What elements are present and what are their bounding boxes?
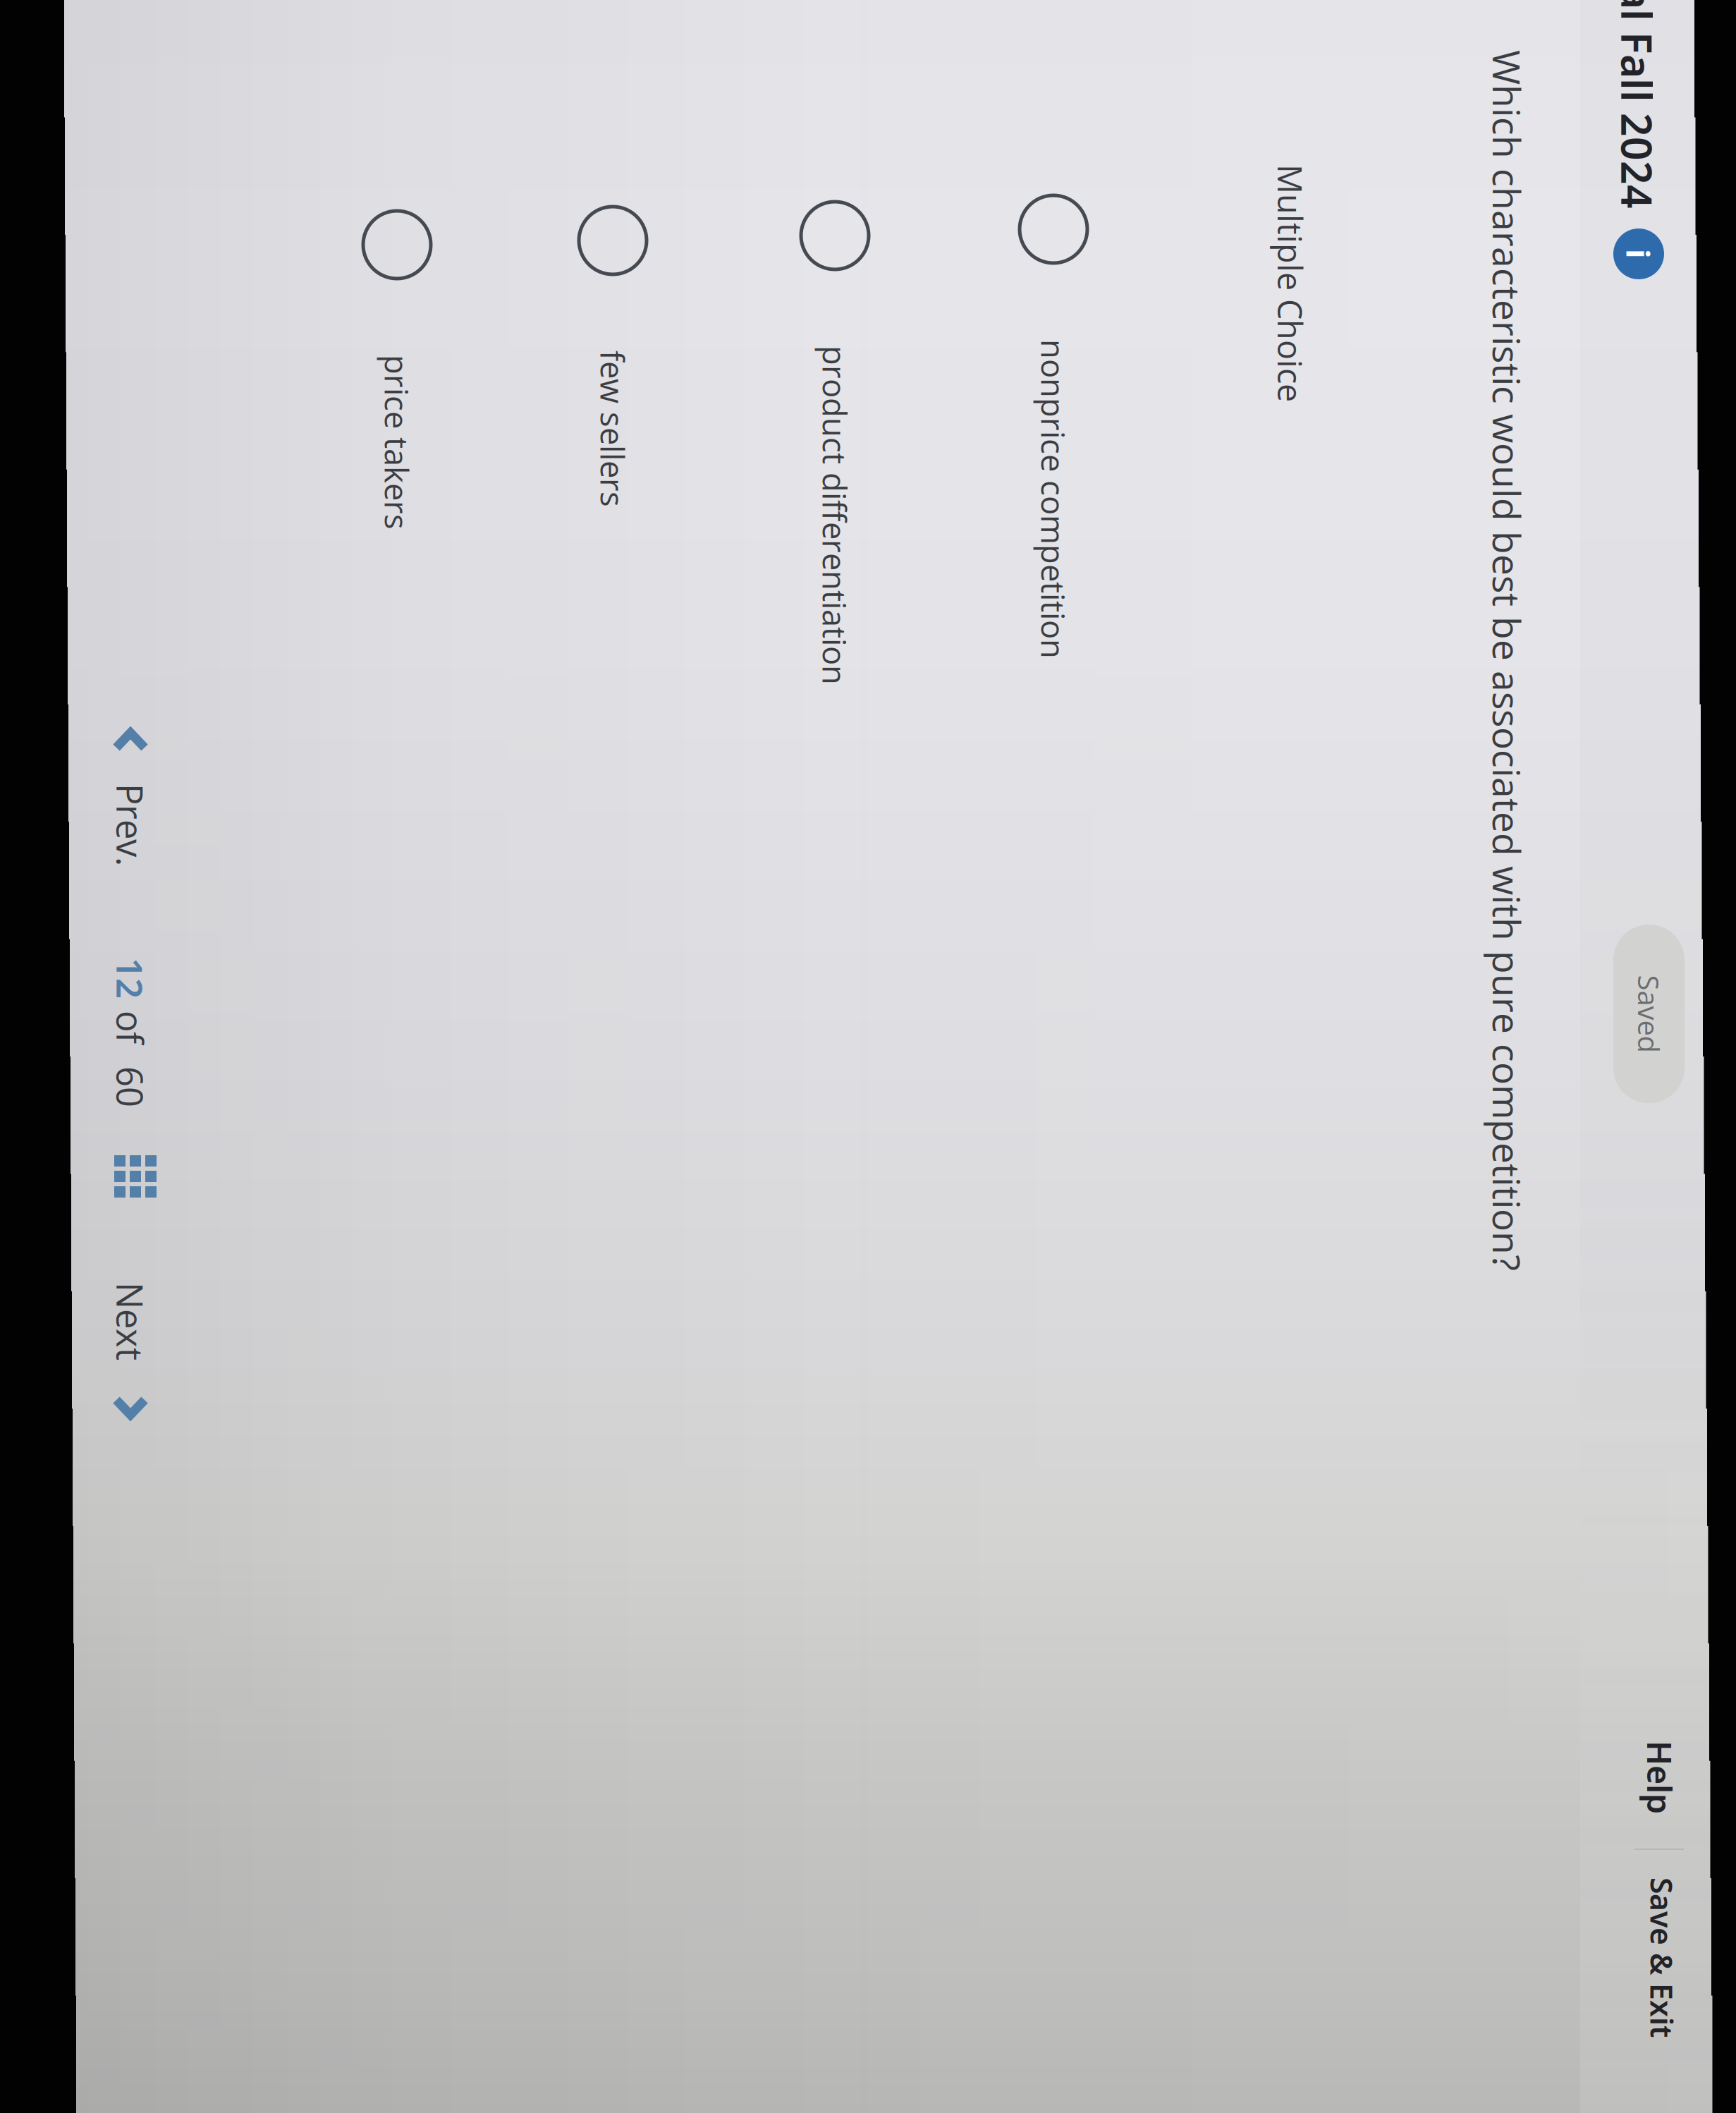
staticText: Help bbox=[1552, 242, 1625, 287]
staticText: Multiple Choice bbox=[0, 611, 214, 656]
staticText: i bbox=[61, 264, 71, 307]
staticText: Which characteristic would best be assoc… bbox=[0, 391, 1082, 443]
button[interactable]: price takers bbox=[23, 1494, 1080, 1561]
button[interactable]: Help bbox=[1531, 214, 1646, 315]
button[interactable]: nonprice competition bbox=[7, 837, 1065, 905]
staticText: Save & Exit bbox=[1689, 242, 1736, 283]
button[interactable]: Question information bbox=[40, 260, 91, 311]
button[interactable]: Save & Exit bbox=[1668, 214, 1736, 311]
staticText: Saved bbox=[787, 256, 864, 295]
button[interactable]: few sellers bbox=[18, 1278, 1076, 1346]
button[interactable]: product differentiation bbox=[13, 1056, 1071, 1124]
